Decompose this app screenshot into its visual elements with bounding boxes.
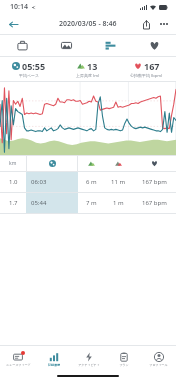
button[interactable]: 記録履歴 [36, 346, 71, 372]
button[interactable]: More options [155, 15, 173, 33]
button[interactable]: Heart rate [132, 35, 176, 56]
staticText: 167 bpm [142, 199, 167, 207]
button[interactable]: プラン [106, 346, 141, 372]
staticText: 1.7 [9, 199, 18, 207]
staticText: 6 m [86, 178, 97, 186]
staticText: 167 [144, 60, 160, 72]
button[interactable]: Photos [44, 35, 88, 56]
staticText: 心拍数平均 (bpm) [130, 73, 163, 78]
button[interactable]: 05:55 [0, 57, 58, 81]
staticText: 記録履歴 [48, 363, 60, 367]
staticText: プラン [119, 363, 129, 367]
staticText: 13 [87, 60, 98, 72]
button[interactable]: Back [4, 15, 22, 33]
button[interactable]: Splits [88, 35, 132, 56]
button[interactable]: 1.7 [0, 193, 176, 213]
staticText: 06:03 [31, 178, 47, 186]
staticText: 上昇高度 (m) [76, 73, 100, 78]
staticText: 1 m [113, 199, 124, 207]
staticText: 1.0 [9, 178, 18, 186]
staticText: 167 bpm [142, 178, 167, 186]
button[interactable]: Share [137, 15, 155, 33]
staticText: アクティビティ [78, 363, 100, 367]
button[interactable]: アクティビティ [71, 346, 106, 372]
staticText: 7 m [86, 199, 97, 207]
staticText: 05:44 [31, 199, 47, 207]
button[interactable]: ニュースフィード [0, 346, 36, 372]
staticText: 2020/03/05 - 8:46 [59, 19, 117, 29]
button[interactable]: 13 [58, 57, 117, 81]
staticText: ニュースフィード [6, 363, 31, 367]
staticText: km [9, 160, 17, 167]
button[interactable]: 167 [117, 57, 176, 81]
staticText: 05:55 [22, 60, 46, 72]
staticText: 11 m [111, 178, 126, 186]
button[interactable]: 1.0 [0, 172, 176, 192]
staticText: 10:14 [10, 2, 28, 12]
button[interactable]: プロフィール [141, 346, 176, 372]
staticText: 平均ペース [19, 73, 40, 78]
button[interactable]: Summary [0, 35, 44, 56]
staticText: プロフィール [149, 363, 168, 367]
